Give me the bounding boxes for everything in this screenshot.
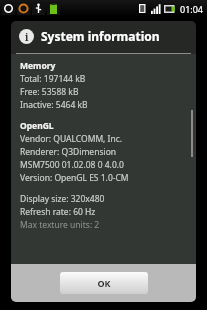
- staticText: Memory: [20, 60, 56, 72]
- staticText: Refresh rate: 60 Hz: [20, 206, 96, 218]
- staticText: Vendor: QUALCOMM, Inc.: [20, 133, 123, 145]
- staticText: System information: [41, 28, 160, 44]
- staticText: OpenGL: [20, 120, 54, 132]
- staticText: Renderer: Q3Dimension: [20, 146, 117, 158]
- staticText: Max texture units: 2: [20, 219, 100, 231]
- button[interactable]: OK: [60, 272, 148, 294]
- staticText: Inactive: 5464 kB: [20, 99, 88, 111]
- staticText: Display size: 320x480: [20, 193, 105, 205]
- staticText: i: [25, 30, 29, 44]
- staticText: 01:04: [180, 3, 204, 15]
- staticText: OK: [97, 277, 111, 289]
- staticText: Version: OpenGL ES 1.0-CM: [20, 172, 129, 184]
- staticText: MSM7500 01.02.08 0 4.0.0: [20, 159, 124, 171]
- staticText: Total: 197144 kB: [20, 73, 86, 85]
- staticText: Free: 53588 kB: [20, 86, 79, 98]
